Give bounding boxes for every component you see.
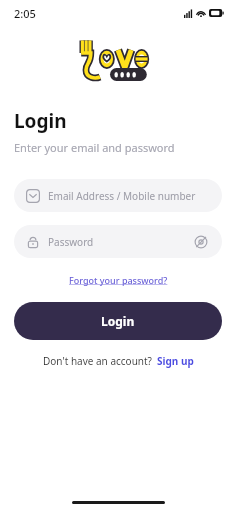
staticText: Password bbox=[48, 235, 192, 249]
staticText: 2:05 bbox=[14, 6, 36, 21]
staticText: Login bbox=[14, 108, 67, 134]
staticText: Enter your email and password bbox=[14, 140, 175, 155]
button[interactable]: Forgot your password? bbox=[65, 270, 172, 290]
button[interactable]: Email Address / Mobile number bbox=[14, 179, 222, 212]
button[interactable]: Show password bbox=[192, 233, 210, 251]
button[interactable]: Password bbox=[14, 225, 222, 258]
button[interactable]: Sign up bbox=[157, 354, 194, 368]
staticText: Don't have an account? bbox=[43, 354, 152, 368]
staticText: Login bbox=[101, 313, 135, 329]
staticText: Forgot your password? bbox=[69, 274, 168, 286]
button[interactable]: Login bbox=[14, 302, 222, 340]
staticText: Email Address / Mobile number bbox=[48, 189, 196, 203]
staticText: Sign up bbox=[157, 354, 194, 368]
